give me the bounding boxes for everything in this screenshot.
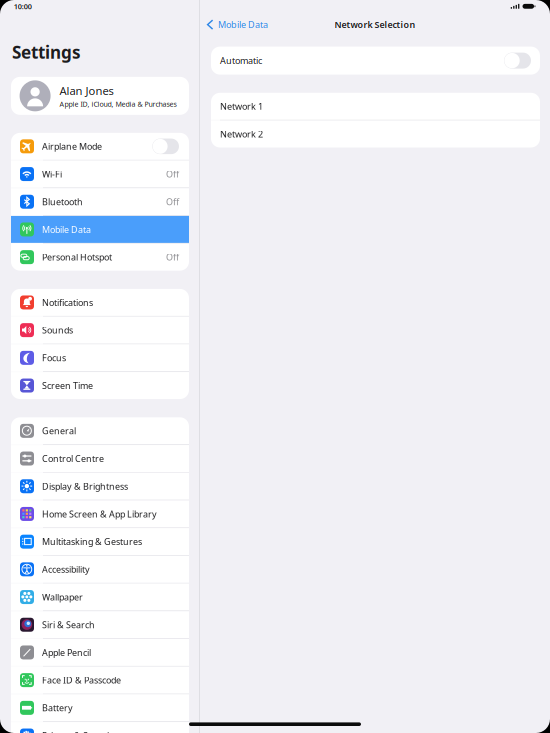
staticText: Siri & Search	[42, 619, 95, 631]
staticText: Apple ID, iCloud, Media & Purchases	[60, 99, 177, 109]
button[interactable]: Siri & Search	[11, 611, 189, 638]
staticText: Bluetooth	[42, 196, 83, 208]
button[interactable]: General	[11, 417, 189, 444]
button[interactable]: Mobile Data	[207, 18, 268, 31]
button[interactable]: Accessibility	[11, 556, 189, 583]
button[interactable]: Screen Time	[11, 372, 189, 399]
staticText: Mobile Data	[42, 223, 91, 236]
staticText: Screen Time	[42, 379, 93, 392]
button[interactable]: Network 2	[211, 120, 540, 147]
staticText: Network 1	[220, 100, 263, 112]
button[interactable]: Wallpaper	[11, 583, 189, 610]
staticText: Off	[166, 196, 179, 208]
button[interactable]: Mobile Data	[11, 216, 189, 243]
staticText: Privacy & Security	[42, 729, 117, 733]
staticText: 10:00	[14, 1, 32, 11]
staticText: Face ID & Passcode	[42, 674, 121, 686]
button[interactable]: Display & Brightness	[11, 473, 189, 500]
staticText: Focus	[42, 352, 66, 364]
staticText: Wallpaper	[42, 591, 83, 603]
staticText: Settings	[12, 41, 81, 64]
staticText: Accessibility	[42, 563, 90, 575]
staticText: Multitasking & Gestures	[42, 536, 142, 548]
staticText: Alan Jones	[60, 83, 114, 98]
button[interactable]: Home Screen & App Library	[11, 500, 189, 527]
button[interactable]: Privacy & Security	[11, 722, 189, 733]
staticText: Off	[166, 168, 179, 180]
staticText: Apple Pencil	[42, 646, 91, 659]
button[interactable]: Alan Jones	[11, 77, 189, 115]
staticText: Network 2	[220, 128, 263, 140]
button[interactable]: Multitasking & Gestures	[11, 528, 189, 555]
staticText: Notifications	[42, 296, 93, 309]
staticText: Sounds	[42, 324, 73, 336]
button[interactable]: Automatic	[211, 47, 540, 75]
button[interactable]: Notifications	[11, 289, 189, 316]
button[interactable]: Network 1	[211, 93, 540, 120]
staticText: Home Screen & App Library	[42, 508, 157, 520]
button[interactable]: Battery	[11, 694, 189, 721]
button[interactable]: Bluetooth	[11, 188, 189, 215]
button[interactable]: Airplane Mode	[11, 133, 189, 160]
staticText: Personal Hotspot	[42, 251, 112, 263]
button[interactable]: Face ID & Passcode	[11, 667, 189, 694]
staticText: Wi-Fi	[42, 168, 62, 180]
button[interactable]: Personal Hotspot	[11, 244, 189, 271]
staticText: General	[42, 425, 76, 437]
button[interactable]: Apple Pencil	[11, 639, 189, 666]
staticText: Battery	[42, 702, 73, 714]
staticText: Display & Brightness	[42, 480, 128, 492]
staticText: Automatic	[220, 54, 262, 67]
staticText: Airplane Mode	[42, 140, 102, 152]
button[interactable]: Control Centre	[11, 445, 189, 472]
staticText: Mobile Data	[218, 18, 268, 31]
staticText: Off	[166, 251, 179, 263]
staticText: Network Selection	[334, 18, 415, 31]
button[interactable]: Wi-Fi	[11, 160, 189, 187]
button[interactable]: Focus	[11, 344, 189, 371]
staticText: Control Centre	[42, 452, 104, 465]
button[interactable]: Sounds	[11, 317, 189, 344]
